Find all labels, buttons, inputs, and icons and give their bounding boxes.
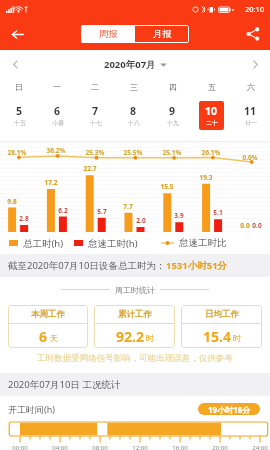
staticText: 时 [233,333,241,343]
button[interactable]: 19小时18分 [198,403,260,415]
staticText: 5 [16,104,23,118]
staticText: 9 [169,104,176,118]
staticText: 二 [91,82,99,92]
staticText: 天 [50,333,58,343]
staticText: 日 [15,82,23,92]
staticText: 2020年07月 [104,58,156,71]
button[interactable]: Next [246,55,264,73]
staticText: 7.7 [113,202,143,211]
staticText: 0.0 [242,221,270,230]
button[interactable]: 10 [199,101,224,130]
staticText: 月报 [153,28,172,40]
button[interactable]: 本周工作 [8,305,88,348]
staticText: 5.1 [203,208,233,217]
staticText: 日均工作 [205,309,239,320]
staticText: 一 [53,82,61,92]
staticText: 00:00 [5,444,35,450]
staticText: 6 [39,327,48,346]
staticText: 16:00 [165,444,195,450]
staticText: 十五 [14,119,26,127]
staticText: 36.2% [41,146,71,155]
staticText: 0.0 [230,221,260,230]
staticText: 四 [169,82,177,92]
staticText: 12:00 [125,444,155,450]
staticText: 15.5 [152,182,182,191]
staticText: 周工时统计 [115,285,155,295]
staticText: 25.3% [80,148,110,157]
staticText: 17.2 [36,178,66,187]
staticText: 08:00 [85,444,115,450]
staticText: 廿一 [245,119,257,127]
button[interactable]: 日均工作 [181,305,262,348]
staticText: 25.5% [118,148,148,157]
staticText: 2.0 [126,216,156,225]
staticText: 0.0% [235,153,265,162]
button[interactable]: 6 [45,101,70,130]
staticText: 3.9 [164,211,194,220]
staticText: 15.4 [203,327,231,346]
button[interactable]: 8 [121,101,146,130]
staticText: 二十 [206,119,218,127]
staticText: 十七 [90,119,102,127]
button[interactable]: 2020年07月 [104,58,167,71]
staticText: 10 [205,104,218,118]
staticText: 24:00 [245,444,270,450]
button[interactable]: Previous [6,55,24,73]
staticText: 7 [92,104,99,118]
staticText: 6.2 [48,206,78,215]
staticText: 20:00 [205,444,235,450]
button[interactable]: 5 [7,101,32,130]
staticText: 28.1% [2,148,32,157]
staticText: 五 [208,82,216,92]
staticText: 截至2020年07月10日设备总工时为： [8,259,166,272]
staticText: 2.8 [9,214,39,223]
staticText: 小暑 [52,119,64,127]
staticText: 04:00 [45,444,75,450]
button[interactable]: 周报 [81,25,135,43]
staticText: 92.2 [116,327,144,346]
staticText: 26.1% [196,148,226,157]
staticText: 19小时18分 [208,404,251,415]
button[interactable]: 月报 [135,25,189,43]
staticText: 十八 [128,119,140,127]
staticText: 十九 [167,119,179,127]
staticText: 总工时(h) [23,237,64,250]
staticText: 开工时间(h) [8,403,55,415]
staticText: 6 [54,104,61,118]
staticText: 怠速工时(h) [88,237,138,250]
staticText: 25.1% [157,148,187,157]
staticText: 8 [130,104,137,118]
staticText: 周报 [99,28,118,40]
staticText: 六 [247,82,255,92]
button[interactable]: 9 [160,101,185,130]
button[interactable]: 7 [83,101,108,130]
staticText: 5.7 [87,207,117,216]
staticText: 本周工作 [31,309,65,320]
staticText: 1531小时51分 [166,259,228,272]
staticText: 2020年07月10日 工况统计 [8,378,121,391]
staticText: 工时数据受网络信号影响，可能出现误差，仅供参考 [0,353,270,364]
staticText: 9.8 [0,197,27,206]
staticText: 三 [130,82,138,92]
staticText: 19.3 [191,173,221,182]
staticText: 22.7 [75,164,105,173]
button[interactable]: Back [6,23,28,45]
staticText: 怠速工时比 [179,237,227,249]
staticText: 20:10 [245,4,265,14]
staticText: 累计工作 [118,309,152,320]
button[interactable]: 累计工作 [94,305,175,348]
staticText: 时 [146,333,154,343]
button[interactable]: 11 [238,101,263,130]
button[interactable]: Share [242,23,264,45]
staticText: 11 [244,104,257,118]
